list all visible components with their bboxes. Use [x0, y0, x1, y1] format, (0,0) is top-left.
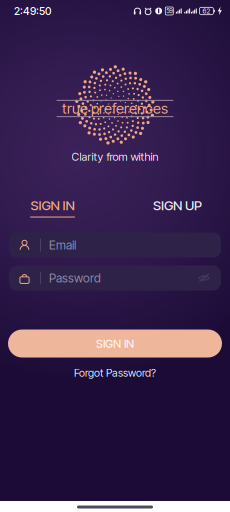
staticText: SIGN UP: [153, 197, 202, 213]
staticText: 2:49:50: [14, 4, 51, 17]
staticText: SIGN IN: [96, 337, 134, 350]
button[interactable]: Show password: [198, 273, 221, 283]
staticText: Email: [49, 238, 76, 252]
button[interactable]: SIGN UP: [151, 197, 204, 217]
staticText: 59: [166, 7, 172, 15]
button[interactable]: SIGN IN: [28, 197, 77, 217]
staticText: Password: [49, 271, 101, 285]
staticText: 62: [202, 7, 210, 15]
staticText: Forgot Password?: [74, 366, 156, 379]
button[interactable]: SIGN IN: [0, 329, 230, 357]
staticText: SIGN IN: [30, 197, 74, 213]
staticText: true preferences: [62, 100, 168, 117]
button[interactable]: Forgot Password?: [74, 366, 156, 379]
staticText: Clarity from within: [71, 150, 158, 163]
